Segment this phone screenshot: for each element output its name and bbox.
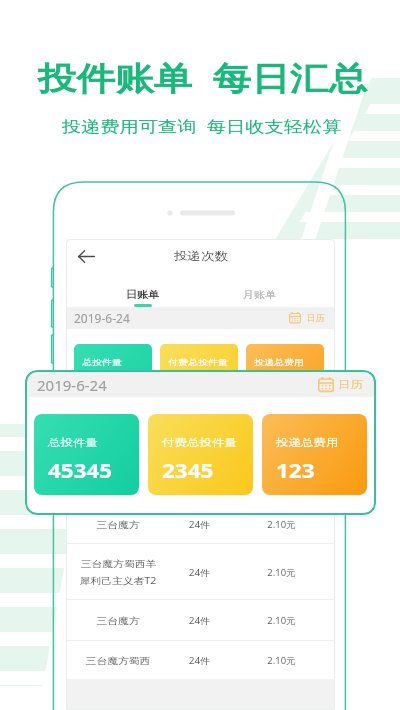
button[interactable]: Calendar [316,372,366,397]
staticText: 投递总费用 [254,357,304,367]
button[interactable]: 投递总费用 [246,344,324,402]
button[interactable]: 三台魔方蜀西 [66,641,335,679]
button[interactable]: 三台魔方蜀西羊 [66,544,335,599]
staticText: 日历 [307,313,325,324]
staticText: 月账单 [242,289,277,301]
staticText: 总投件量 [82,357,122,367]
staticText: 2.10元 [267,471,296,483]
staticText: 日历 [338,378,363,391]
staticText: 2345 [162,457,213,484]
staticText: 24件 [189,471,211,483]
staticText: 付费总投件量 [168,357,228,367]
staticText: 投递总费用 [276,436,338,449]
button[interactable]: 总投件量 [34,414,139,495]
staticText: 三台魔方 [96,519,140,530]
button[interactable]: 总投件量 [74,344,152,402]
button[interactable]: 三台魔方 [66,600,335,640]
button[interactable]: Back [72,242,100,270]
button[interactable]: 投递总费用 [262,414,367,495]
staticText: 24件 [189,566,211,578]
staticText: 2019-6-24 [37,375,107,395]
button[interactable]: Calendar [287,307,325,329]
staticText: 犀利己主义者T2 [79,479,157,491]
staticText: 123 [276,457,315,484]
staticText: 2019-6-24 [74,310,130,326]
staticText: 45345 [48,457,113,484]
staticText: 24件 [189,614,211,626]
staticText: 2.10元 [267,566,296,578]
staticText: 总投件量 [48,436,98,449]
staticText: 2.10元 [267,614,296,626]
staticText: 付费总投件量 [162,436,237,449]
staticText: 三台魔方蜀西羊 [81,463,156,474]
button[interactable]: 日账单 [128,289,157,301]
button[interactable]: 月账单 [245,289,274,301]
staticText: 2.10元 [267,654,296,666]
staticText: 24件 [189,518,211,530]
button[interactable]: 三台魔方 [66,505,335,543]
button[interactable]: 付费总投件量 [160,344,238,402]
staticText: 日账单 [125,289,160,301]
staticText: 投件账单 每日汇总 [38,55,367,99]
button[interactable]: 三台魔方蜀西羊 [66,449,335,504]
staticText: 24件 [189,654,211,666]
staticText: 投递费用可查询 每日收支轻松算 [62,115,342,137]
staticText: 三台魔方蜀西羊 [81,558,156,569]
staticText: 三台魔方 [96,615,140,626]
staticText: 投递次数 [174,249,228,263]
staticText: 2.10元 [267,518,296,530]
staticText: 犀利己主义者T2 [79,574,157,586]
button[interactable]: 付费总投件量 [148,414,253,495]
staticText: 三台魔方蜀西 [86,655,150,666]
